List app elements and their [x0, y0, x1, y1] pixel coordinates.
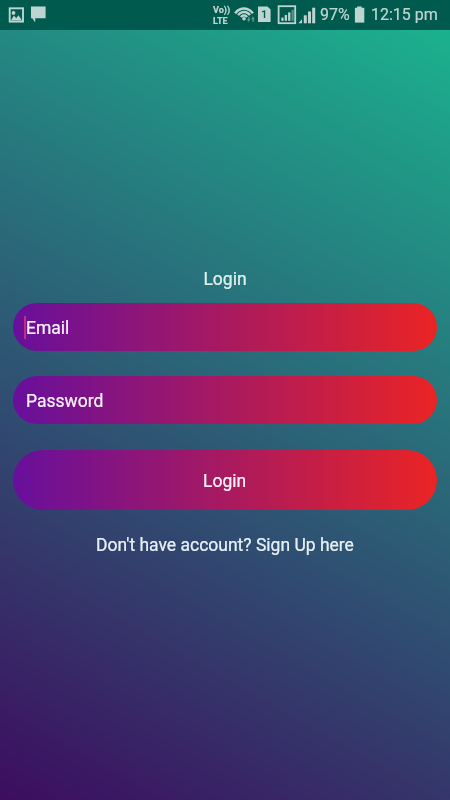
button[interactable]: Password — [13, 376, 437, 424]
staticText: Login — [0, 269, 450, 290]
button[interactable]: Login — [13, 450, 437, 510]
staticText: 12:15 pm — [371, 5, 438, 24]
staticText: Email — [26, 318, 70, 339]
staticText: LTE — [213, 16, 228, 27]
staticText: Login — [203, 471, 247, 492]
staticText: 1 — [261, 8, 268, 21]
staticText: Vo)) — [213, 5, 231, 16]
button[interactable]: Email — [13, 303, 437, 351]
staticText: 97% — [320, 5, 350, 24]
button[interactable]: Don't have account? Sign Up here — [0, 535, 450, 556]
staticText: Password — [26, 391, 104, 412]
